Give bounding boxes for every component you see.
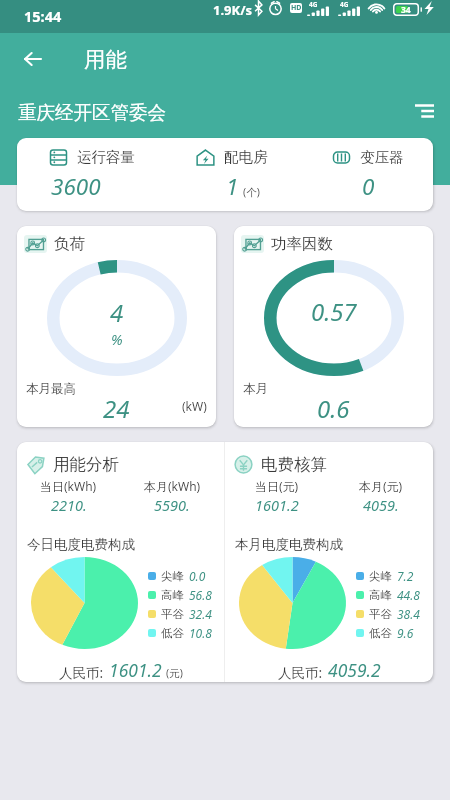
- staticText: 人民币:: [278, 664, 323, 682]
- staticText: 用能: [84, 46, 127, 73]
- staticText: 0.0: [189, 568, 206, 584]
- button[interactable]: 变压器: [294, 138, 433, 211]
- staticText: 1.9K/s: [213, 1, 253, 19]
- staticText: 10.8: [189, 625, 212, 641]
- staticText: 运行容量: [77, 148, 135, 166]
- staticText: 负荷: [54, 234, 85, 254]
- staticText: 24: [103, 392, 130, 425]
- staticText: 人民币:: [59, 664, 104, 682]
- staticText: 1: [226, 171, 239, 202]
- staticText: 0.57: [311, 295, 357, 328]
- staticText: 重庆经开区管委会: [18, 101, 166, 124]
- staticText: 32.4: [189, 606, 212, 622]
- staticText: 今日电度电费构成: [27, 536, 135, 553]
- staticText: 功率因数: [271, 234, 333, 254]
- staticText: 4059.: [363, 495, 399, 515]
- staticText: 本月电度电费构成: [235, 536, 343, 553]
- button[interactable]: 运行容量: [17, 138, 155, 211]
- staticText: 56.8: [189, 587, 212, 603]
- staticText: (元): [166, 666, 183, 680]
- staticText: 5590.: [154, 495, 190, 515]
- staticText: 本月最高: [26, 381, 76, 397]
- staticText: 尖峰: [161, 569, 184, 583]
- staticText: 用能分析: [53, 454, 119, 475]
- staticText: 变压器: [360, 148, 404, 166]
- staticText: 平谷: [369, 607, 392, 621]
- staticText: 高峰: [369, 588, 392, 602]
- staticText: 高峰: [161, 588, 184, 602]
- button[interactable]: Back: [8, 35, 56, 83]
- staticText: 1601.2: [255, 495, 299, 515]
- staticText: 当日(元): [255, 478, 299, 494]
- staticText: 0.6: [317, 392, 350, 425]
- staticText: 当日(kWh): [40, 478, 97, 494]
- staticText: %: [111, 329, 123, 349]
- staticText: 4: [110, 296, 124, 329]
- staticText: 尖峰: [369, 569, 392, 583]
- staticText: (kW): [182, 398, 207, 414]
- staticText: 1601.2: [109, 658, 162, 682]
- staticText: 本月: [243, 381, 268, 397]
- staticText: 电费核算: [261, 454, 327, 475]
- staticText: 本月(kWh): [144, 478, 201, 494]
- button[interactable]: 配电房: [155, 138, 294, 211]
- staticText: 15:44: [24, 6, 62, 26]
- staticText: 0: [362, 171, 375, 202]
- staticText: 2210.: [51, 495, 87, 515]
- staticText: 本月(元): [359, 478, 403, 494]
- staticText: 3600: [51, 171, 101, 202]
- staticText: 7.2: [397, 568, 414, 584]
- staticText: HD: [291, 3, 302, 13]
- staticText: 4G: [309, 0, 318, 9]
- button[interactable]: Filter menu: [409, 94, 439, 124]
- staticText: 低谷: [369, 626, 392, 640]
- staticText: 34: [401, 4, 411, 16]
- staticText: 44.8: [397, 587, 420, 603]
- staticText: 4059.2: [328, 658, 381, 682]
- staticText: 4G: [340, 0, 349, 9]
- staticText: 配电房: [224, 148, 268, 166]
- staticText: 9.6: [397, 625, 414, 641]
- staticText: 低谷: [161, 626, 184, 640]
- staticText: 38.4: [397, 606, 420, 622]
- staticText: 平谷: [161, 607, 184, 621]
- staticText: (个): [243, 185, 260, 199]
